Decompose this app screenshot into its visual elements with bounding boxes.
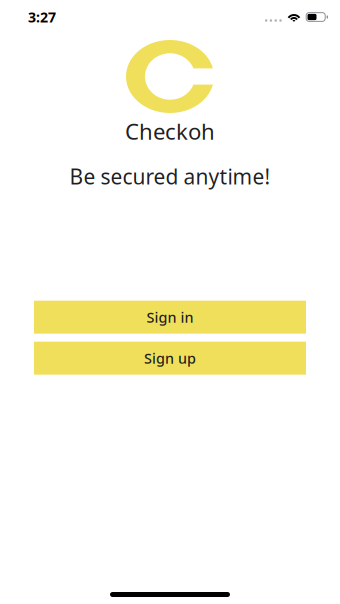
button[interactable]: Sign up [34,342,306,375]
staticText: Sign in [146,307,193,327]
staticText: Checkoh [125,116,215,146]
staticText: Sign up [144,348,196,368]
staticText: Be secured anytime! [69,162,270,191]
button[interactable]: Sign in [34,301,306,334]
staticText: 3:27 [28,7,56,27]
